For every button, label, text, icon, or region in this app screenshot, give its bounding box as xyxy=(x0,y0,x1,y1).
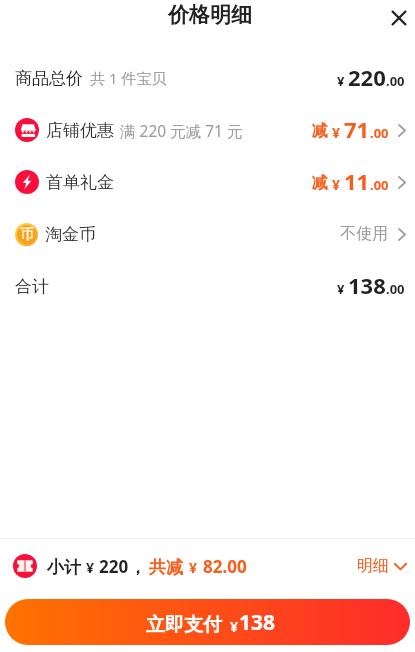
staticText: 11 xyxy=(344,166,370,196)
button[interactable]: 店铺优惠 xyxy=(0,104,415,156)
staticText: ¥ xyxy=(332,123,341,142)
staticText: ¥ xyxy=(86,558,95,577)
staticText: ， xyxy=(129,557,146,578)
staticText: 小计 xyxy=(47,557,81,578)
staticText: ¥ xyxy=(337,72,345,90)
button[interactable]: 立即支付 xyxy=(5,599,410,645)
staticText: 减 xyxy=(312,173,328,193)
staticText: ¥ xyxy=(337,280,345,298)
button[interactable]: 明细 xyxy=(353,556,411,576)
staticText: 82.00 xyxy=(203,555,247,578)
staticText: 明细 xyxy=(357,556,389,576)
staticText: .00 xyxy=(370,124,389,142)
button[interactable]: 币 xyxy=(0,208,415,260)
staticText: 不使用 xyxy=(340,224,388,244)
staticText: ¥ xyxy=(230,617,239,636)
staticText: 减 xyxy=(312,121,328,141)
staticText: 首单礼金 xyxy=(46,172,114,193)
staticText: 138 xyxy=(348,270,386,300)
staticText: ¥ xyxy=(332,175,341,194)
staticText: 共 1 件宝贝 xyxy=(90,68,167,88)
staticText: 价格明细 xyxy=(168,2,252,28)
staticText: 淘金币 xyxy=(45,224,96,245)
button[interactable]: Close xyxy=(384,3,414,33)
button[interactable]: 首单礼金 xyxy=(0,156,415,208)
staticText: 合计 xyxy=(15,276,49,297)
staticText: ¥ xyxy=(189,558,198,577)
staticText: 币 xyxy=(20,226,34,243)
staticText: 138 xyxy=(239,608,276,637)
staticText: 立即支付 xyxy=(146,613,222,637)
staticText: 商品总价 xyxy=(15,68,83,89)
staticText: 71 xyxy=(344,114,370,144)
staticText: 220 xyxy=(99,555,129,578)
staticText: 店铺优惠 xyxy=(46,120,114,141)
staticText: .00 xyxy=(386,72,405,90)
staticText: 满 220 元减 71 元 xyxy=(120,120,243,141)
staticText: .00 xyxy=(370,176,389,194)
staticText: 共减 xyxy=(149,557,183,578)
staticText: 220 xyxy=(348,62,386,92)
staticText: .00 xyxy=(386,280,405,298)
